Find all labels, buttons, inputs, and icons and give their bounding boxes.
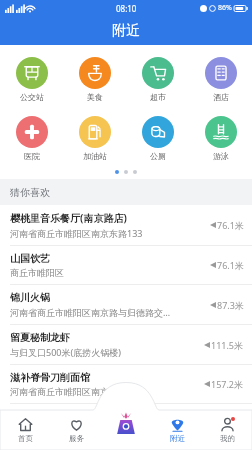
staticText: 河南省商丘市睢阳区南京路与归德路交… [10, 306, 171, 318]
button[interactable]: 留夏秘制龙虾 [0, 324, 252, 364]
button[interactable]: 酒店 [189, 53, 252, 106]
staticText: 111.5米 [211, 339, 244, 351]
button[interactable]: 首页 [0, 410, 51, 450]
button[interactable]: 游泳 [189, 112, 252, 165]
button[interactable]: 附近 [152, 410, 202, 450]
button[interactable]: 山国饮艺 [0, 245, 252, 284]
staticText: 山国饮艺 [10, 252, 50, 265]
staticText: 河南省商丘市睢阳区南京路 [10, 386, 118, 397]
staticText: 樱桃里音乐餐厅(南京路店) [10, 211, 127, 225]
button[interactable]: 发布 [102, 410, 152, 450]
staticText: 我的 [220, 434, 235, 443]
staticText: 76.1米 [217, 259, 244, 271]
button[interactable]: 超市 [126, 53, 189, 106]
button[interactable]: 滋补脊骨刀削面馆 [0, 364, 252, 403]
staticText: 公交站 [20, 92, 44, 102]
button[interactable]: 服务 [51, 410, 102, 450]
button[interactable]: 樱桃里音乐餐厅(南京路店) [0, 205, 252, 245]
staticText: 河南省商丘市睢阳区南京东路133 [10, 227, 143, 239]
staticText: 与归叉口500米(底捞火锅楼) [10, 346, 121, 358]
button[interactable]: 我的 [202, 410, 252, 450]
button[interactable]: 发布 [113, 410, 139, 436]
button[interactable]: 加油站 [63, 112, 126, 165]
staticText: 留夏秘制龙虾 [10, 331, 70, 344]
button[interactable]: 锦川火锅 [0, 284, 252, 324]
staticText: 商丘市睢阳区 [10, 267, 64, 278]
staticText: 猜你喜欢 [10, 186, 50, 199]
staticText: 公厕 [150, 151, 166, 161]
staticText: 157.2米 [211, 378, 244, 390]
staticText: 86% [218, 3, 232, 13]
button[interactable]: 医院 [0, 112, 63, 165]
staticText: 76.1米 [217, 219, 244, 231]
staticText: 游泳 [213, 151, 229, 161]
staticText: 滋补脊骨刀削面馆 [10, 371, 90, 384]
staticText: 超市 [150, 92, 166, 102]
staticText: 美食 [87, 92, 103, 102]
button[interactable]: 公厕 [126, 112, 189, 165]
staticText: 医院 [24, 151, 40, 161]
staticText: 附近 [170, 434, 185, 443]
button[interactable]: 公交站 [0, 53, 63, 106]
staticText: 加油站 [83, 151, 107, 161]
staticText: 首页 [18, 434, 33, 443]
staticText: 酒店 [213, 92, 229, 102]
button[interactable]: 美食 [63, 53, 126, 106]
staticText: 附近 [112, 22, 140, 40]
staticText: 锦川火锅 [10, 291, 50, 304]
staticText: 服务 [69, 434, 84, 443]
button[interactable]: 单县羊汤馆 [0, 403, 252, 410]
staticText: 08:10 [116, 3, 137, 14]
staticText: 87.3米 [217, 299, 244, 311]
